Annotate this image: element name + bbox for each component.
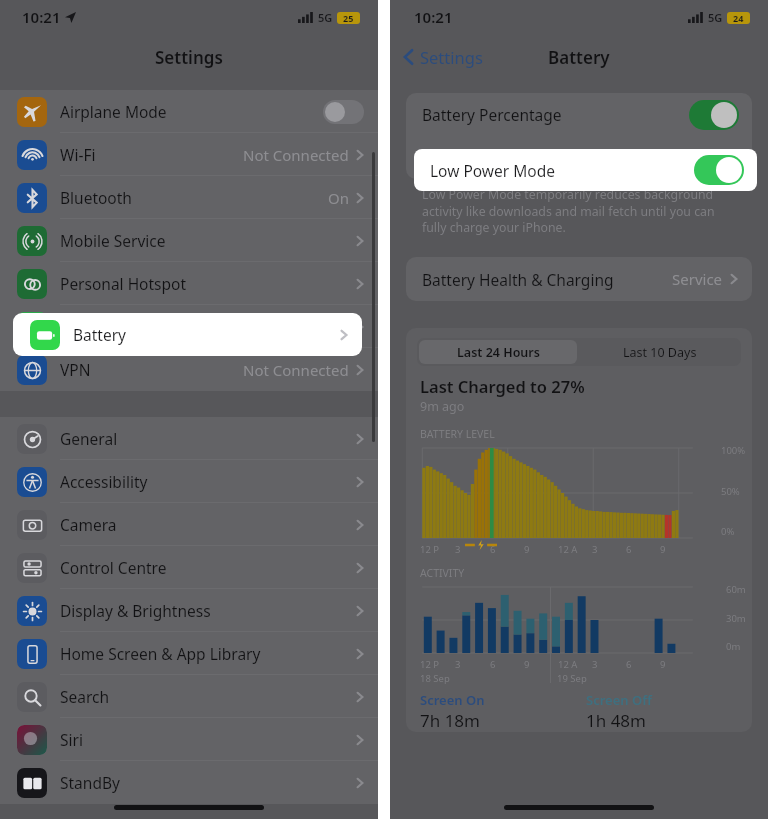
staticText: Wi-Fi bbox=[60, 144, 96, 165]
button[interactable]: Camera bbox=[0, 503, 378, 546]
button[interactable]: Airplane Mode bbox=[0, 90, 378, 133]
button[interactable]: Battery Percentage bbox=[406, 93, 752, 136]
button[interactable]: Settings bbox=[402, 46, 483, 68]
staticText: Battery bbox=[60, 316, 114, 337]
staticText: Low Power Mode bbox=[430, 160, 555, 181]
staticText: General bbox=[60, 428, 118, 449]
staticText: Not Connected bbox=[243, 145, 349, 165]
button[interactable]: Last 10 Days bbox=[579, 338, 741, 366]
staticText: Service bbox=[672, 269, 723, 289]
staticText: Battery bbox=[548, 46, 610, 69]
staticText: 6 bbox=[626, 658, 632, 671]
staticText: 12 A bbox=[558, 658, 578, 671]
staticText: Battery Health & Charging bbox=[422, 269, 614, 290]
staticText: Last Charged to 27% bbox=[420, 375, 585, 397]
staticText: Mobile Service bbox=[60, 230, 166, 251]
staticText: Low Power Mode temporarily reduces backg… bbox=[422, 186, 715, 235]
staticText: 6 bbox=[626, 543, 632, 556]
button[interactable]: VPN bbox=[0, 348, 378, 391]
staticText: 7h 18m bbox=[420, 709, 480, 732]
button[interactable]: StandBy bbox=[0, 761, 378, 804]
staticText: Settings bbox=[155, 46, 223, 69]
staticText: 6 bbox=[490, 658, 496, 671]
staticText: Screen Off bbox=[586, 691, 652, 709]
staticText: 6 bbox=[490, 543, 496, 556]
staticText: 9 bbox=[524, 658, 530, 671]
staticText: Last 10 Days bbox=[623, 344, 697, 361]
button[interactable]: Battery bbox=[13, 313, 362, 356]
staticText: 50% bbox=[721, 485, 740, 498]
staticText: VPN bbox=[60, 359, 91, 380]
button[interactable]: Low Power Mode bbox=[414, 149, 757, 191]
staticText: 30m bbox=[726, 612, 746, 625]
button[interactable]: Bluetooth bbox=[0, 176, 378, 219]
button[interactable]: Search bbox=[0, 675, 378, 718]
staticText: 9 bbox=[660, 658, 666, 671]
staticText: ACTIVITY bbox=[420, 566, 465, 580]
staticText: 10:21 bbox=[414, 7, 453, 27]
staticText: Battery Percentage bbox=[422, 104, 562, 125]
staticText: 3 bbox=[592, 543, 598, 556]
staticText: 1h 48m bbox=[586, 709, 646, 732]
staticText: 60m bbox=[726, 583, 746, 596]
staticText: Accessibility bbox=[60, 471, 148, 492]
staticText: 9 bbox=[660, 543, 666, 556]
staticText: Bluetooth bbox=[60, 187, 132, 208]
staticText: BATTERY LEVEL bbox=[420, 427, 495, 441]
button[interactable]: Accessibility bbox=[0, 460, 378, 503]
button[interactable]: Siri bbox=[0, 718, 378, 761]
staticText: 18 Sep bbox=[420, 672, 450, 685]
staticText: 25 bbox=[343, 12, 354, 24]
staticText: 12 P bbox=[420, 658, 440, 671]
staticText: Settings bbox=[420, 46, 483, 68]
button[interactable]: Battery bbox=[0, 305, 378, 348]
staticText: 5G bbox=[318, 10, 333, 25]
staticText: 3 bbox=[455, 543, 461, 556]
staticText: Not Connected bbox=[243, 360, 349, 380]
staticText: StandBy bbox=[60, 772, 120, 793]
staticText: 12 P bbox=[420, 543, 440, 556]
staticText: 3 bbox=[592, 658, 598, 671]
staticText: Siri bbox=[60, 729, 83, 750]
staticText: 10:21 bbox=[22, 7, 61, 27]
button[interactable]: Battery Health & Charging bbox=[406, 257, 752, 301]
staticText: 24 bbox=[733, 12, 744, 24]
button[interactable]: Home Screen & App Library bbox=[0, 632, 378, 675]
button[interactable]: Control Centre bbox=[0, 546, 378, 589]
staticText: 9 bbox=[524, 543, 530, 556]
staticText: 0% bbox=[721, 525, 735, 538]
staticText: Camera bbox=[60, 514, 117, 535]
staticText: Home Screen & App Library bbox=[60, 643, 261, 664]
staticText: Last 24 Hours bbox=[457, 344, 540, 361]
staticText: 9m ago bbox=[420, 398, 465, 415]
button[interactable]: Display & Brightness bbox=[0, 589, 378, 632]
staticText: 3 bbox=[455, 658, 461, 671]
staticText: On bbox=[328, 188, 349, 208]
button[interactable]: Personal Hotspot bbox=[0, 262, 378, 305]
staticText: Personal Hotspot bbox=[60, 273, 187, 294]
staticText: 0m bbox=[726, 640, 741, 653]
staticText: 12 A bbox=[558, 543, 578, 556]
button[interactable]: Mobile Service bbox=[0, 219, 378, 262]
staticText: Control Centre bbox=[60, 557, 167, 578]
staticText: Search bbox=[60, 686, 110, 707]
staticText: Display & Brightness bbox=[60, 600, 211, 621]
staticText: 5G bbox=[708, 10, 723, 25]
button[interactable]: General bbox=[0, 417, 378, 460]
staticText: Airplane Mode bbox=[60, 101, 167, 122]
staticText: Battery bbox=[73, 324, 127, 345]
button[interactable]: Last 24 Hours bbox=[419, 340, 577, 364]
staticText: 19 Sep bbox=[557, 672, 587, 685]
button[interactable]: Wi-Fi bbox=[0, 133, 378, 176]
staticText: Screen On bbox=[420, 691, 485, 709]
staticText: 100% bbox=[721, 444, 746, 457]
